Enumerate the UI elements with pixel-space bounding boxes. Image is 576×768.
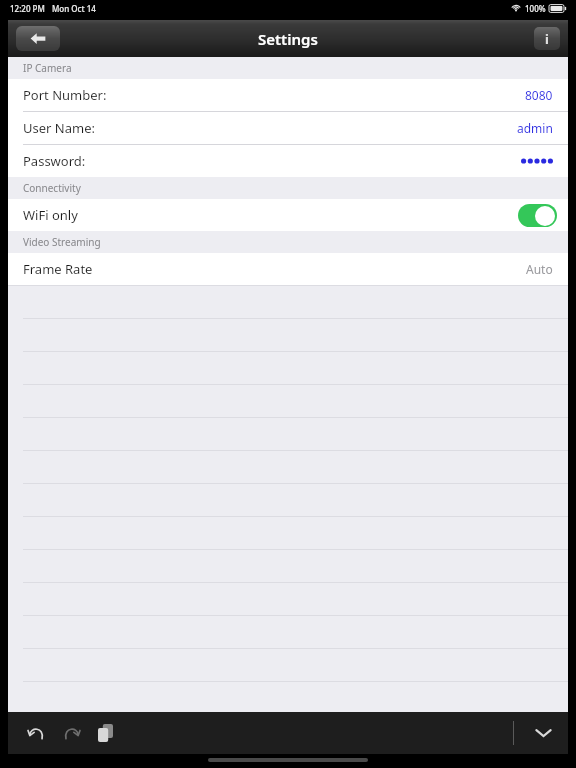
staticText: Mon Oct 14 <box>52 3 96 14</box>
button[interactable]: Collapse <box>528 718 558 748</box>
staticText: User Name: <box>23 119 95 137</box>
staticText: 8080 <box>525 87 553 103</box>
button[interactable]: Frame Rate <box>8 253 568 285</box>
staticText: 100% <box>525 3 546 14</box>
staticText: Password: <box>23 152 86 170</box>
staticText: IP Camera <box>23 61 72 75</box>
button[interactable]: Password: <box>8 145 568 177</box>
button[interactable]: WiFi only <box>8 199 568 231</box>
button[interactable]: Back <box>16 26 60 51</box>
button[interactable]: Info <box>534 27 560 50</box>
staticText: Frame Rate <box>23 260 93 278</box>
button[interactable]: Undo <box>22 718 52 748</box>
button[interactable]: WiFi only toggle, on <box>518 204 557 227</box>
staticText: WiFi only <box>23 206 78 224</box>
staticText: Settings <box>258 29 318 49</box>
button[interactable]: Port Number: <box>8 79 568 111</box>
staticText: 12:20 PM <box>10 3 45 14</box>
staticText: Port Number: <box>23 86 107 104</box>
button[interactable]: Redo <box>56 718 86 748</box>
staticText: Video Streaming <box>23 235 101 249</box>
button[interactable]: User Name: <box>8 112 568 144</box>
staticText: i <box>545 30 549 48</box>
staticText: Auto <box>526 261 553 277</box>
button[interactable]: Copy <box>90 718 120 748</box>
staticText: admin <box>517 120 553 136</box>
staticText: Connectivity <box>23 181 81 195</box>
